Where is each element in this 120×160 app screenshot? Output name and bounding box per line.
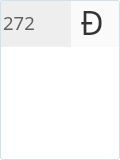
staticText: 272	[3, 10, 35, 35]
staticText: Ð	[80, 1, 104, 45]
button[interactable]: Dogecoin	[71, 0, 120, 47]
button[interactable]: 272	[0, 0, 71, 47]
